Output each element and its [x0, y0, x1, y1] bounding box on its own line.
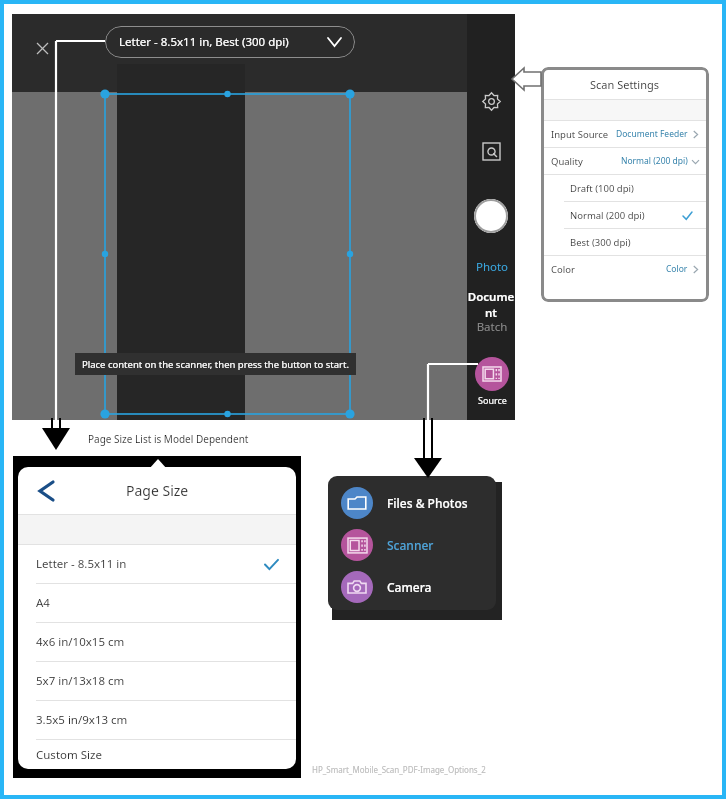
staticText: Normal (200 dpi)	[570, 209, 683, 222]
button[interactable]: Close	[30, 36, 54, 60]
button[interactable]: Best (300 dpi)	[544, 229, 706, 255]
staticText: A4	[36, 595, 278, 611]
button[interactable]: Photo	[474, 259, 510, 275]
staticText: Source	[478, 394, 507, 406]
staticText: 3.5x5 in/9x13 cm	[36, 712, 278, 728]
button[interactable]: Files & Photos	[328, 482, 496, 524]
staticText: Input Source	[551, 128, 616, 141]
staticText: Best (300 dpi)	[570, 236, 692, 249]
staticText: HP_Smart_Mobile_Scan_PDF-Image_Options_2	[312, 764, 486, 775]
button[interactable]: Preview	[476, 136, 506, 166]
staticText: Files & Photos	[387, 495, 468, 511]
staticText: Color	[666, 263, 688, 275]
staticText: Place content on the scanner, then press…	[82, 358, 349, 371]
staticText: Draft (100 dpi)	[570, 182, 692, 195]
button[interactable]: Draft (100 dpi)	[544, 175, 706, 201]
button[interactable]: Quality	[544, 148, 706, 174]
button[interactable]: Settings	[476, 86, 506, 116]
button[interactable]: 5x7 in/13x18 cm	[18, 662, 296, 700]
staticText: Letter - 8.5x11 in, Best (300 dpi)	[119, 34, 328, 50]
button[interactable]: Letter - 8.5x11 in	[18, 545, 296, 583]
button[interactable]: Batch	[474, 319, 510, 335]
staticText: Camera	[387, 579, 432, 595]
staticText: Quality	[551, 155, 621, 168]
staticText: 5x7 in/13x18 cm	[36, 673, 278, 689]
button[interactable]: Camera	[328, 566, 496, 608]
staticText: Page Size	[126, 481, 189, 500]
button[interactable]: Document	[467, 289, 515, 321]
staticText: 4x6 in/10x15 cm	[36, 634, 278, 650]
button[interactable]: A4	[18, 584, 296, 622]
staticText: Scanner	[387, 537, 434, 553]
button[interactable]: Custom Size	[18, 740, 296, 769]
button[interactable]: 4x6 in/10x15 cm	[18, 623, 296, 661]
staticText: Letter - 8.5x11 in	[36, 556, 265, 572]
button[interactable]: Input Source	[544, 121, 706, 147]
button[interactable]: Normal (200 dpi)	[544, 202, 706, 228]
button[interactable]: Scan	[474, 199, 508, 233]
button[interactable]: Back	[40, 467, 296, 514]
staticText: Custom Size	[36, 747, 278, 763]
staticText: Color	[551, 263, 666, 276]
button[interactable]: Letter - 8.5x11 in, Best (300 dpi)	[105, 26, 355, 58]
button[interactable]: Source	[472, 357, 512, 406]
button[interactable]: Color	[544, 256, 706, 282]
staticText: Page Size List is Model Dependent	[88, 432, 249, 446]
button[interactable]: Scanner	[328, 524, 496, 566]
staticText: Normal (200 dpi)	[621, 155, 688, 167]
button[interactable]: 3.5x5 in/9x13 cm	[18, 701, 296, 739]
staticText: Document Feeder	[616, 128, 688, 140]
staticText: Scan Settings	[590, 77, 660, 92]
